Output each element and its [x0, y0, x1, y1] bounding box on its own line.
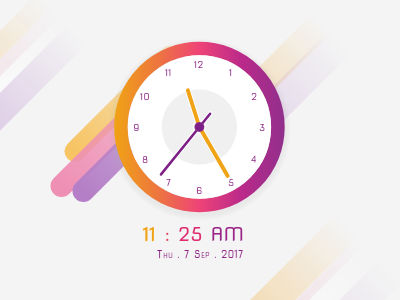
staticText: 2	[251, 91, 258, 102]
staticText: .	[173, 248, 184, 260]
staticText: 3	[259, 122, 266, 133]
staticText: 8	[142, 154, 149, 165]
staticText: 25	[178, 223, 203, 246]
staticText: 6	[196, 185, 203, 196]
staticText: 11	[143, 223, 157, 246]
staticText: 7	[166, 177, 171, 188]
staticText: 4	[251, 154, 257, 165]
staticText: S	[194, 248, 201, 260]
staticText: 7	[184, 248, 190, 260]
staticText: AM	[203, 223, 245, 246]
staticText: T	[157, 248, 163, 260]
staticText: 1	[229, 67, 233, 78]
staticText: 2017	[221, 248, 243, 260]
staticText: :	[157, 223, 178, 246]
staticText: 10	[140, 91, 150, 102]
staticText: 12	[194, 59, 204, 70]
staticText: EP	[201, 251, 210, 260]
staticText: 9	[133, 122, 140, 133]
staticText: 11	[165, 67, 172, 78]
staticText: .	[210, 248, 221, 260]
staticText: HU	[163, 251, 173, 260]
staticText: 5	[228, 177, 235, 188]
